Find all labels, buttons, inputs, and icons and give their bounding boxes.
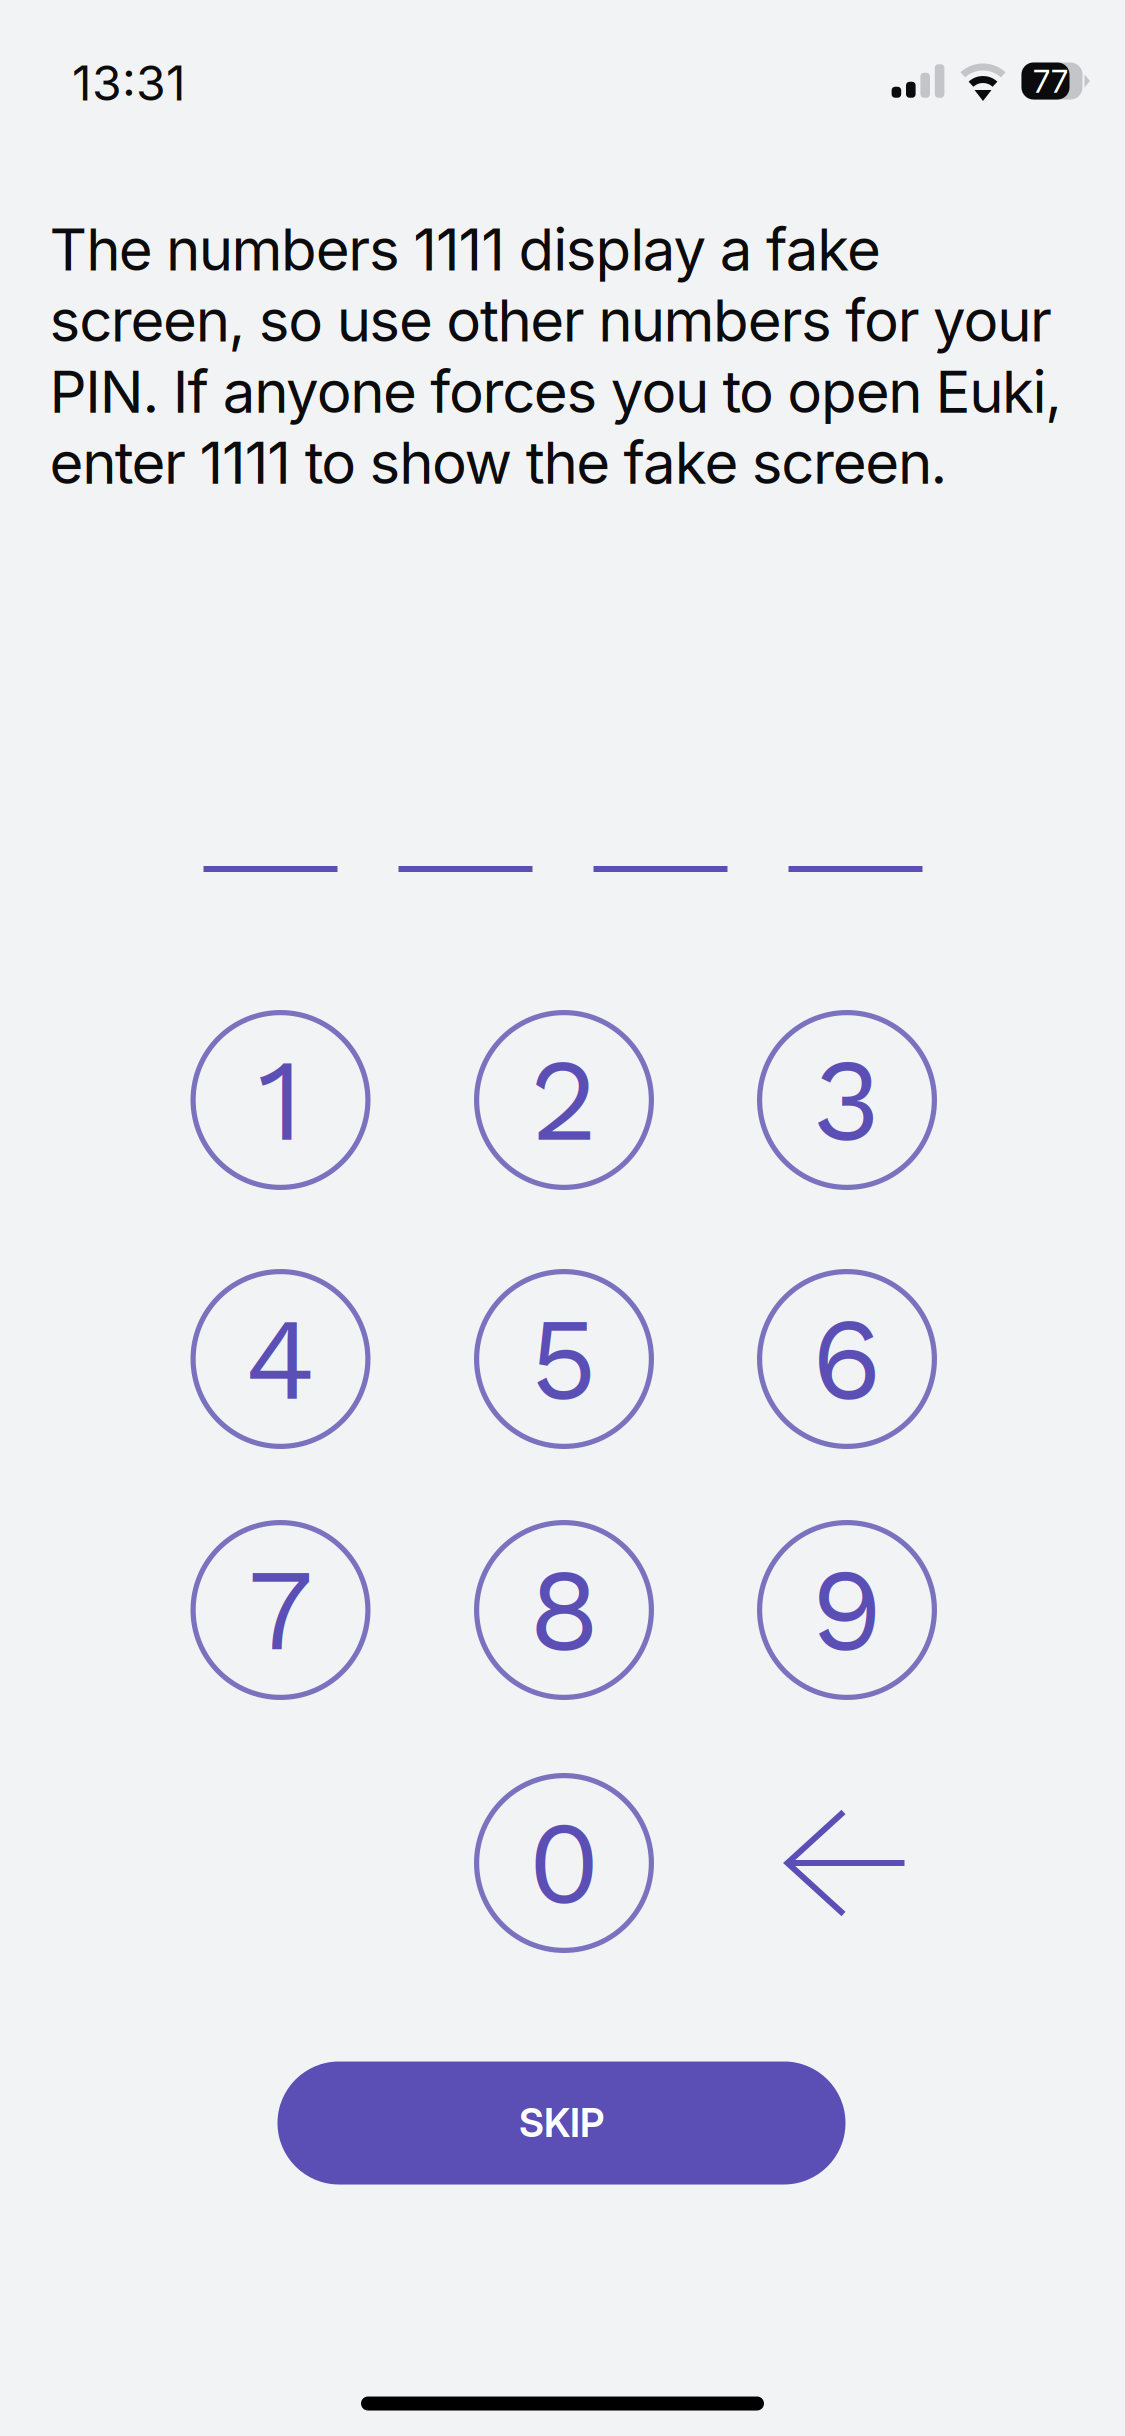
button[interactable]: 6 xyxy=(757,1269,937,1449)
staticText: 8 xyxy=(528,1542,599,1678)
button[interactable]: 9 xyxy=(757,1520,937,1700)
staticText: 3 xyxy=(813,1032,881,1168)
button[interactable]: Delete xyxy=(757,1773,937,1953)
staticText: 7 xyxy=(248,1542,313,1678)
staticText: 9 xyxy=(811,1542,883,1678)
button[interactable]: 4 xyxy=(190,1269,370,1449)
staticText: 13:31 xyxy=(72,54,186,112)
staticText: The numbers 1111 display a fake screen, … xyxy=(49,214,1062,498)
button[interactable]: 0 xyxy=(474,1773,654,1953)
button[interactable]: 1 xyxy=(190,1010,370,1190)
staticText: 2 xyxy=(530,1032,598,1168)
button[interactable]: 2 xyxy=(474,1010,654,1190)
staticText: 6 xyxy=(811,1291,882,1427)
button[interactable]: 3 xyxy=(757,1010,937,1190)
staticText: SKIP xyxy=(519,2100,604,2146)
staticText: 5 xyxy=(530,1291,598,1427)
button[interactable]: SKIP xyxy=(277,2061,845,2184)
button[interactable]: 8 xyxy=(474,1520,654,1700)
staticText: 0 xyxy=(528,1795,600,1931)
staticText: 1 xyxy=(258,1032,303,1168)
button[interactable]: 5 xyxy=(474,1269,654,1449)
button[interactable]: 7 xyxy=(190,1520,370,1700)
staticText: 77 xyxy=(1033,62,1068,100)
staticText: 4 xyxy=(245,1291,316,1427)
